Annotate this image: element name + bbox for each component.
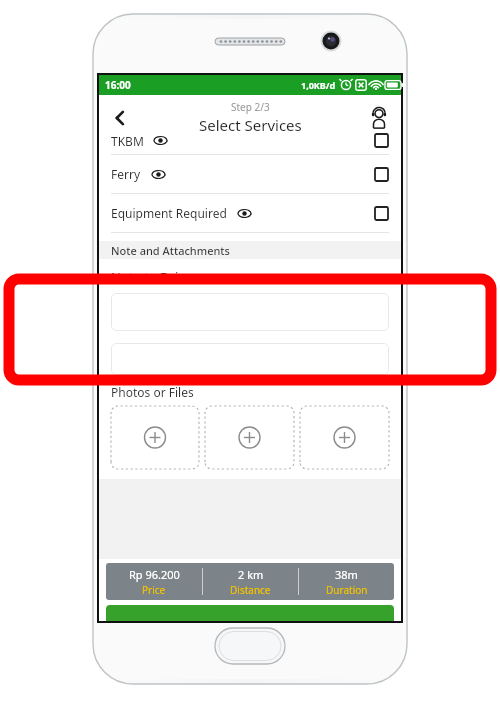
staticText: 2 km <box>238 567 264 582</box>
button[interactable]: Add photo or file <box>205 406 294 469</box>
button[interactable]: Equipment Required <box>99 194 401 232</box>
staticText: Note and Attachments <box>111 243 230 258</box>
staticText: Duration <box>326 583 368 597</box>
staticText: Equipment Required <box>111 205 227 221</box>
staticText: 38m <box>335 567 358 582</box>
button[interactable]: Add photo or file <box>300 406 389 469</box>
button[interactable]: Checkbox <box>373 166 389 182</box>
staticText: Ferry <box>111 166 141 182</box>
button[interactable]: Rp 96.200 <box>106 563 394 600</box>
button[interactable] <box>111 293 389 331</box>
button[interactable]: Show info <box>150 166 166 182</box>
staticText: Select Services <box>199 115 302 135</box>
button[interactable]: Show info <box>152 133 168 147</box>
button[interactable]: Back <box>103 101 137 135</box>
button[interactable]: Add photo or file <box>111 406 199 469</box>
button[interactable] <box>111 343 389 375</box>
staticText: Distance <box>230 583 271 597</box>
staticText: Price <box>142 583 166 597</box>
staticText: Note to Driver <box>111 268 198 286</box>
button[interactable]: Checkbox <box>373 205 389 221</box>
button[interactable]: TKBM <box>99 140 401 154</box>
button[interactable]: Ferry <box>99 155 401 193</box>
button[interactable]: Continue <box>106 605 394 621</box>
staticText: Photos or Files <box>111 384 194 400</box>
button[interactable]: Checkbox <box>373 133 389 147</box>
button[interactable]: Support <box>361 100 397 136</box>
staticText: Rp 96.200 <box>129 567 180 582</box>
staticText: 16:00 <box>105 78 131 92</box>
staticText: Step 2/3 <box>231 100 270 114</box>
staticText: TKBM <box>111 133 144 147</box>
staticText: 1,0KB/d <box>301 79 336 91</box>
button[interactable]: Show info <box>236 205 252 221</box>
